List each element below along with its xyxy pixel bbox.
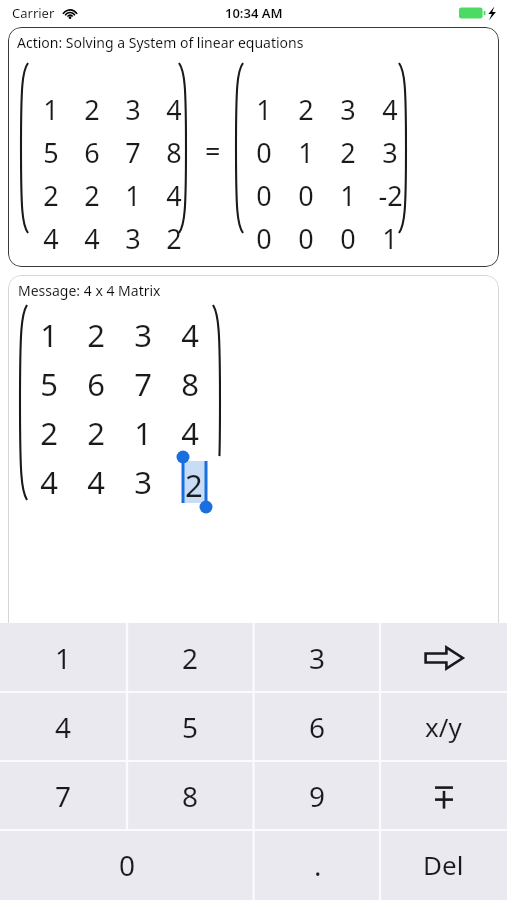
staticText: 3 <box>134 314 152 356</box>
staticText: -2 <box>378 177 403 214</box>
staticText: 9 <box>309 777 326 815</box>
staticText: 2 <box>84 91 100 128</box>
staticText: 0 <box>298 177 314 214</box>
staticText: 8 <box>181 363 199 405</box>
staticText: 6 <box>84 134 100 171</box>
button[interactable]: Next <box>380 623 507 692</box>
button[interactable]: 1 <box>0 623 127 692</box>
staticText: 1 <box>40 314 58 356</box>
button[interactable]: 3 <box>254 623 381 692</box>
staticText: 4 <box>55 708 72 746</box>
staticText: 5 <box>40 363 58 405</box>
staticText: 2 <box>298 91 314 128</box>
button[interactable]: Plus minus <box>380 761 507 830</box>
staticText: 1 <box>256 91 272 128</box>
staticText: Message: 4 x 4 Matrix <box>18 281 161 300</box>
button[interactable]: 7 <box>0 761 127 830</box>
staticText: 2 <box>87 412 105 454</box>
button[interactable]: 8 <box>127 761 254 830</box>
staticText: 0 <box>298 220 314 257</box>
staticText: 0 <box>119 846 136 884</box>
staticText: 3 <box>340 91 356 128</box>
staticText: 8 <box>166 134 182 171</box>
staticText: 10:34 AM <box>225 4 283 22</box>
staticText: 2 <box>84 177 100 214</box>
button[interactable]: 6 <box>254 692 381 761</box>
staticText: 1 <box>382 220 398 257</box>
staticText: 0 <box>256 177 272 214</box>
staticText: 1 <box>125 177 141 214</box>
staticText: 0 <box>256 220 272 257</box>
staticText: 4 <box>181 412 199 454</box>
button[interactable]: Del <box>380 830 507 899</box>
staticText: 2 <box>40 412 58 454</box>
staticText: 2 <box>43 177 59 214</box>
staticText: x/y <box>425 709 462 744</box>
button[interactable]: Action: Solving a System of linear equat… <box>8 27 499 267</box>
staticText: 2 <box>182 639 199 677</box>
staticText: 2 <box>166 220 182 257</box>
staticText: 1 <box>298 134 314 171</box>
staticText: 0 <box>340 220 356 257</box>
staticText: 3 <box>125 220 141 257</box>
staticText: 7 <box>55 777 72 815</box>
staticText: 4 <box>87 461 105 503</box>
staticText: Del <box>423 847 464 882</box>
staticText: 2 <box>185 464 203 506</box>
staticText: 6 <box>87 363 105 405</box>
staticText: 3 <box>134 461 152 503</box>
staticText: 5 <box>182 708 199 746</box>
staticText: 7 <box>134 363 152 405</box>
staticText: . <box>314 846 322 884</box>
button[interactable]: Message: 4 x 4 Matrix <box>8 275 499 635</box>
staticText: 5 <box>43 134 59 171</box>
staticText: 4 <box>43 220 59 257</box>
staticText: 3 <box>309 639 326 677</box>
staticText: 6 <box>309 708 326 746</box>
button[interactable]: 0 <box>0 830 254 899</box>
staticText: Carrier <box>12 4 55 22</box>
staticText: 3 <box>125 91 141 128</box>
staticText: 1 <box>340 177 356 214</box>
button[interactable]: 4 <box>0 692 127 761</box>
staticText: 4 <box>181 314 199 356</box>
button[interactable]: 2 <box>127 623 254 692</box>
staticText: 4 <box>382 91 398 128</box>
staticText: Action: Solving a System of linear equat… <box>17 33 304 52</box>
staticText: 2 <box>87 314 105 356</box>
staticText: 2 <box>340 134 356 171</box>
staticText: 4 <box>84 220 100 257</box>
staticText: 3 <box>382 134 398 171</box>
staticText: 4 <box>166 91 182 128</box>
staticText: 4 <box>40 461 58 503</box>
staticText: 1 <box>134 412 152 454</box>
staticText: 1 <box>43 91 59 128</box>
button[interactable]: x/y <box>380 692 507 761</box>
staticText: 1 <box>55 639 72 677</box>
staticText: 4 <box>166 177 182 214</box>
staticText: 2 <box>181 461 199 503</box>
staticText: 7 <box>125 134 141 171</box>
staticText: = <box>205 132 221 169</box>
button[interactable]: . <box>254 830 381 899</box>
staticText: 8 <box>182 777 199 815</box>
staticText: 0 <box>256 134 272 171</box>
button[interactable]: 5 <box>127 692 254 761</box>
button[interactable]: 9 <box>254 761 381 830</box>
